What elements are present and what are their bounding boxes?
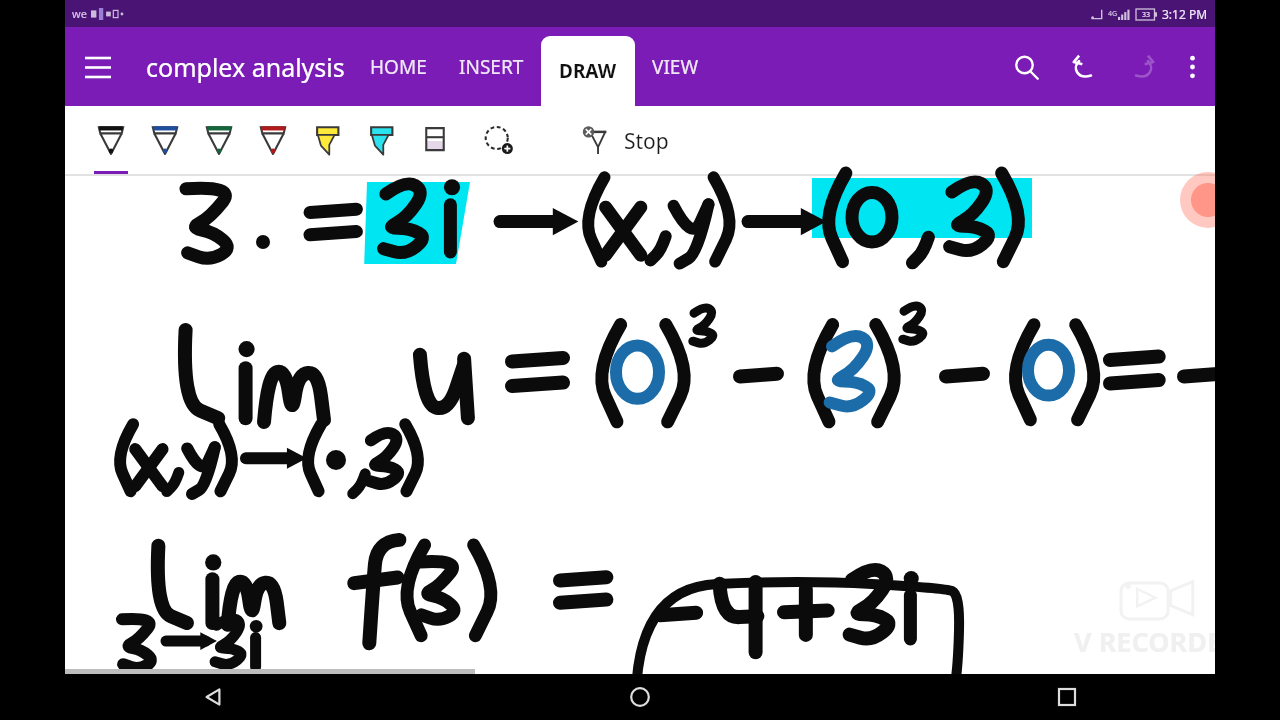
button[interactable]: Black pen [84,106,138,176]
button[interactable]: Search [1002,43,1050,91]
staticText: 4G [1108,9,1118,19]
button[interactable]: Navigation menu [72,41,124,93]
staticText: we [72,6,87,21]
button[interactable]: VIEW [647,27,704,106]
button[interactable]: Redo [1118,43,1166,91]
staticText: VIEW [652,54,699,80]
staticText: HOME [370,54,427,80]
button[interactable]: DRAW [541,27,635,106]
button[interactable]: Stop [622,127,669,156]
button[interactable]: Green pen [192,106,246,176]
staticText: complex analysis [146,50,345,84]
button[interactable]: Yellow highlighter [300,106,354,176]
button[interactable]: Stop ink to text [568,106,622,176]
button[interactable]: Lasso select [472,106,526,176]
button[interactable]: Home [426,674,853,720]
staticText: INSERT [459,54,524,80]
button[interactable]: Cyan highlighter [354,106,408,176]
button[interactable]: Recent apps [853,674,1280,720]
staticText: DRAW [559,58,617,84]
button[interactable]: Eraser [408,106,462,176]
button[interactable]: HOME [365,27,432,106]
button[interactable]: More options [1172,47,1212,87]
button[interactable]: complex analysis [146,50,345,84]
button[interactable]: Back [0,674,426,720]
staticText: 33 [1142,10,1151,20]
button[interactable]: Blue pen [138,106,192,176]
staticText: 3:12 PM [1162,6,1208,22]
staticText: V RECORDER [1074,623,1240,660]
button[interactable]: Undo [1060,43,1108,91]
button[interactable]: INSERT [454,27,529,106]
staticText: Stop [624,127,669,156]
button[interactable]: Red pen [246,106,300,176]
